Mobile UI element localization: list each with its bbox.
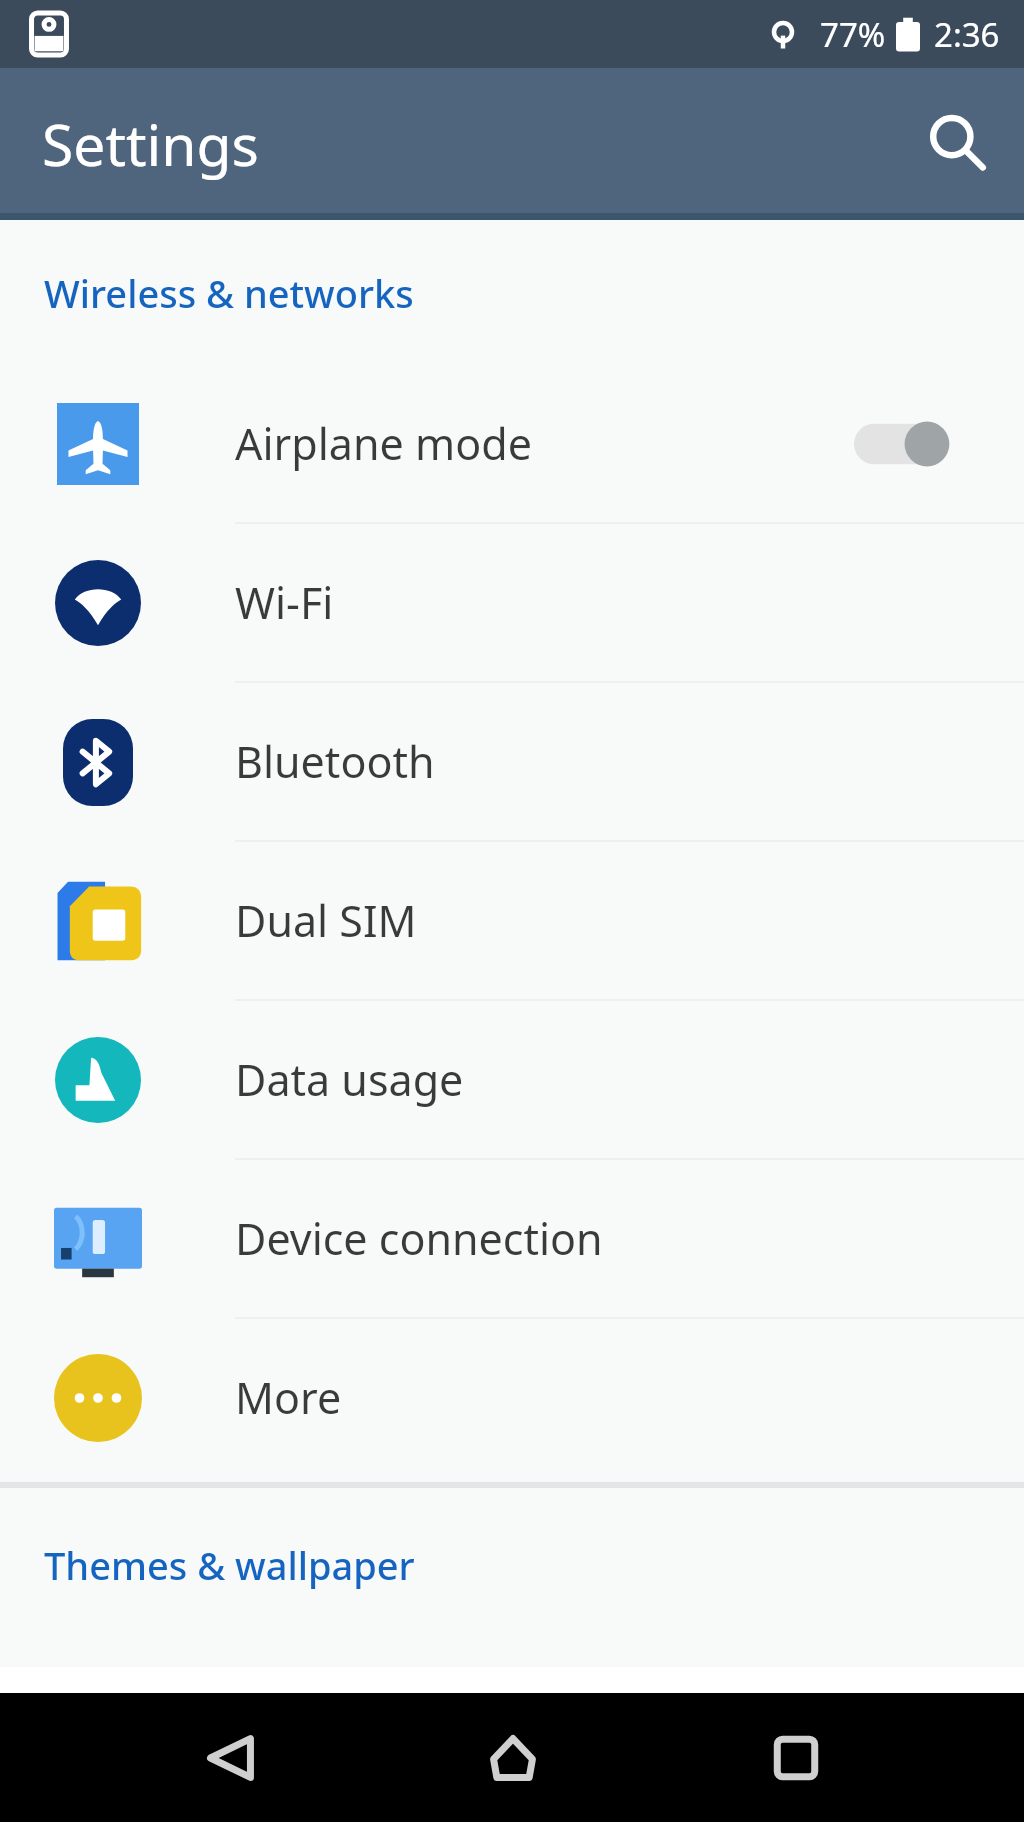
staticText: Airplane mode	[235, 414, 532, 473]
staticText: Themes & wallpaper	[44, 1539, 415, 1591]
button[interactable]: Home	[463, 1708, 563, 1808]
staticText: Data usage	[235, 1050, 464, 1109]
button[interactable]: Data usage	[0, 1001, 1024, 1158]
button[interactable]: Back	[181, 1708, 281, 1808]
button[interactable]: Recent apps	[746, 1708, 846, 1808]
button[interactable]: Dual SIM	[0, 842, 1024, 999]
staticText: Bluetooth	[235, 732, 435, 791]
staticText: 2:36	[934, 12, 1000, 57]
staticText: Settings	[42, 105, 259, 183]
staticText: Dual SIM	[235, 891, 417, 950]
button[interactable]: Search	[910, 96, 1006, 192]
staticText: 77%	[820, 12, 886, 57]
staticText: Wireless & networks	[44, 267, 414, 319]
button[interactable]: Wi-Fi	[0, 524, 1024, 681]
button[interactable]: More	[0, 1319, 1024, 1476]
button[interactable]: Device connection	[0, 1160, 1024, 1317]
staticText: More	[235, 1368, 342, 1427]
button[interactable]: Bluetooth	[0, 683, 1024, 840]
button[interactable]: Airplane mode	[0, 365, 1024, 522]
staticText: Wi-Fi	[235, 573, 334, 632]
staticText: Device connection	[235, 1209, 603, 1268]
